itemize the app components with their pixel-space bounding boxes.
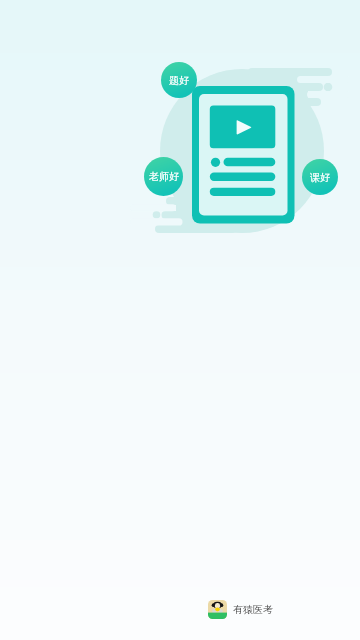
button[interactable]: 课好 — [302, 159, 338, 195]
staticText: 老师好 — [149, 170, 179, 183]
button[interactable]: 题好 — [161, 62, 197, 98]
staticText: 课好 — [310, 171, 330, 184]
button[interactable]: 有猿医考 — [208, 600, 273, 619]
staticText: 有猿医考 — [233, 603, 273, 616]
button[interactable]: 老师好 — [144, 157, 183, 196]
staticText: 题好 — [169, 74, 189, 87]
